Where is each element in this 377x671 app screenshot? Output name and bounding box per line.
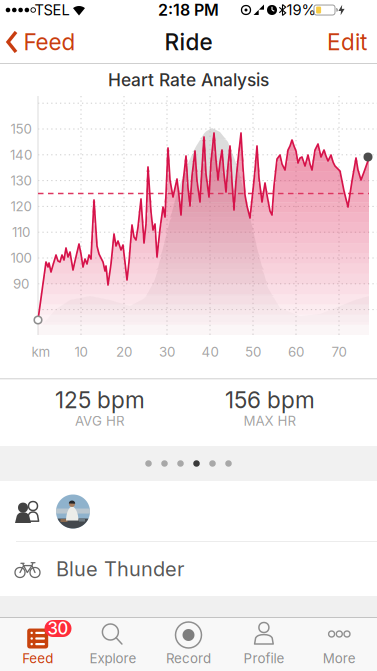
staticText: 156 bpm <box>225 387 315 413</box>
button[interactable]: 30 <box>0 617 75 671</box>
button[interactable]: Explore <box>75 617 151 671</box>
staticText: 2:18 PM <box>158 1 219 19</box>
staticText: AVG HR <box>75 413 125 429</box>
staticText: More <box>323 651 356 666</box>
staticText: 125 bpm <box>55 387 145 413</box>
staticText: 150 <box>10 121 31 137</box>
staticText: Edit <box>327 29 367 55</box>
staticText: Profile <box>243 651 284 666</box>
button[interactable]: Blue Thunder <box>0 542 377 596</box>
button[interactable]: Record <box>151 617 226 671</box>
staticText: Record <box>166 651 211 666</box>
staticText: 140 <box>10 147 32 163</box>
staticText: TSEL <box>34 1 69 19</box>
staticText: MAX HR <box>243 413 296 429</box>
staticText: 30 <box>47 618 68 639</box>
staticText: km <box>31 344 50 360</box>
button[interactable]: More <box>302 617 377 671</box>
staticText: 30 <box>159 344 175 360</box>
staticText: 19% <box>286 1 315 19</box>
staticText: Ride <box>164 29 212 55</box>
staticText: 40 <box>201 344 218 360</box>
staticText: Feed <box>22 651 53 666</box>
staticText: 90 <box>13 276 29 292</box>
staticText: Heart Rate Analysis <box>108 70 269 90</box>
button[interactable]: Edit <box>327 29 367 55</box>
staticText: Blue Thunder <box>56 557 184 581</box>
staticText: 70 <box>331 344 346 360</box>
staticText: 120 <box>10 198 31 214</box>
staticText: 130 <box>10 173 31 188</box>
staticText: 110 <box>12 224 30 240</box>
staticText: 10 <box>74 344 87 360</box>
button[interactable]: Athletes <box>0 481 377 542</box>
staticText: 100 <box>10 250 31 266</box>
button[interactable]: Profile <box>226 617 302 671</box>
staticText: Explore <box>90 651 137 666</box>
staticText: Feed <box>23 29 75 55</box>
button[interactable]: Feed <box>6 29 75 55</box>
staticText: 60 <box>288 344 304 360</box>
staticText: 50 <box>245 344 261 360</box>
staticText: 20 <box>116 344 132 360</box>
